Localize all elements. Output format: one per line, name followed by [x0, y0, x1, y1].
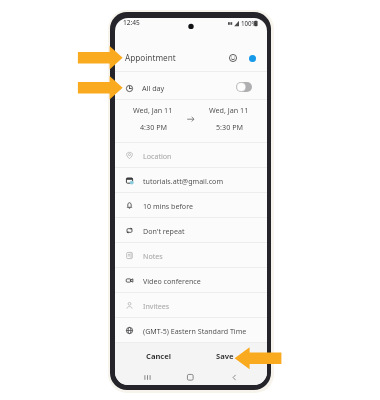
staticText: Wed, Jan 11	[209, 105, 249, 115]
button[interactable]: Don't repeat	[115, 218, 267, 243]
button[interactable]: Event colour	[243, 49, 261, 67]
staticText: 12:45	[123, 18, 140, 27]
button[interactable]: Appointment	[115, 36, 267, 72]
staticText: tutorials.att@gmail.com	[143, 176, 224, 186]
button[interactable]: Location	[115, 143, 267, 168]
staticText: Appointment	[125, 52, 176, 63]
button[interactable]: Wed, Jan 11	[118, 105, 188, 132]
button[interactable]: Sticker	[224, 49, 242, 67]
staticText: 5:30 PM	[216, 122, 243, 132]
button[interactable]: tutorials.att@gmail.com	[115, 168, 267, 193]
button[interactable]: All day toggle	[236, 82, 252, 92]
staticText: All day	[142, 83, 165, 93]
staticText: Save	[216, 351, 234, 361]
staticText: Notes	[143, 251, 163, 261]
button[interactable]: Recents	[139, 369, 155, 385]
button[interactable]: Video conference	[115, 268, 267, 293]
button[interactable]: Home	[182, 369, 198, 385]
staticText: Location	[143, 151, 172, 161]
button[interactable]: Save	[195, 343, 255, 368]
staticText: 4:30 PM	[140, 122, 167, 132]
staticText: Wed, Jan 11	[133, 105, 173, 115]
button[interactable]: Wed, Jan 11	[194, 105, 264, 132]
staticText: Invitees	[143, 301, 170, 311]
staticText: Video conference	[143, 276, 201, 286]
button[interactable]: (GMT-5) Eastern Standard Time	[115, 318, 267, 343]
button[interactable]: Cancel	[129, 343, 189, 368]
button[interactable]: 10 mins before	[115, 193, 267, 218]
staticText: Cancel	[146, 351, 172, 361]
button[interactable]: Invitees	[115, 293, 267, 318]
staticText: Don't repeat	[143, 226, 185, 236]
staticText: 10 mins before	[143, 201, 193, 211]
button[interactable]: All day	[115, 72, 267, 100]
button[interactable]: Notes	[115, 243, 267, 268]
staticText: 100%	[241, 19, 257, 27]
staticText: (GMT-5) Eastern Standard Time	[143, 326, 247, 336]
button[interactable]: Back	[226, 369, 242, 385]
